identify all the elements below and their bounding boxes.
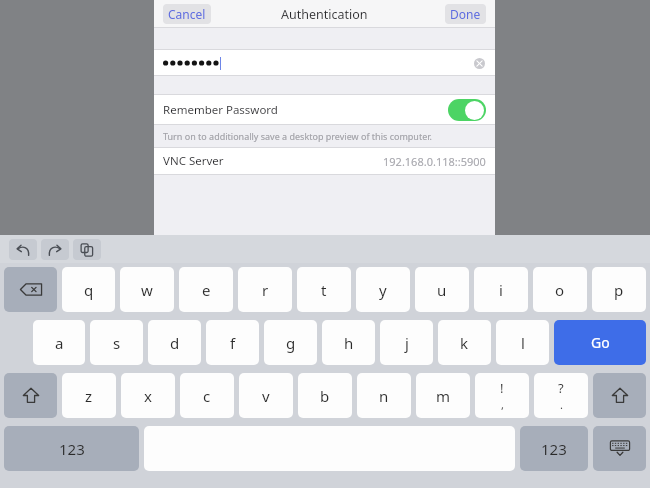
staticText: ? [558, 379, 564, 397]
button[interactable]: y [356, 267, 410, 312]
staticText: , [501, 397, 504, 412]
staticText: l [521, 333, 525, 353]
button[interactable]: o [533, 267, 587, 312]
staticText: n [379, 386, 389, 406]
button[interactable]: v [239, 373, 293, 418]
button[interactable]: x [121, 373, 175, 418]
staticText: 192.168.0.118::5900 [383, 154, 486, 169]
staticText: u [437, 280, 447, 300]
button[interactable]: f [206, 320, 259, 365]
staticText: d [170, 333, 180, 353]
staticText: j [405, 333, 409, 353]
staticText: k [460, 333, 469, 353]
button[interactable]: g [264, 320, 317, 365]
button[interactable]: t [297, 267, 351, 312]
button[interactable]: i [474, 267, 528, 312]
button[interactable]: Backspace [4, 267, 57, 312]
button[interactable]: n [357, 373, 411, 418]
staticText: Go [591, 333, 610, 352]
staticText: y [379, 280, 387, 300]
button[interactable]: Done [445, 4, 486, 24]
staticText: Turn on to additionally save a desktop p… [163, 130, 432, 142]
staticText: h [344, 333, 354, 353]
staticText: e [202, 280, 211, 300]
staticText: Cancel [168, 6, 206, 22]
button[interactable]: Redo [41, 239, 69, 260]
staticText: i [499, 280, 503, 300]
button[interactable]: m [416, 373, 470, 418]
staticText: ! [500, 379, 504, 397]
button[interactable]: s [90, 320, 143, 365]
button[interactable]: 123 [4, 426, 139, 471]
staticText: m [436, 386, 451, 406]
staticText: r [262, 280, 269, 300]
staticText: g [286, 333, 296, 353]
button[interactable]: r [238, 267, 292, 312]
staticText: s [113, 333, 121, 353]
button[interactable]: b [298, 373, 352, 418]
button[interactable]: Copy [73, 239, 101, 260]
button[interactable]: d [148, 320, 201, 365]
button[interactable]: Remember Password [154, 94, 495, 125]
button[interactable]: l [496, 320, 549, 365]
button[interactable]: ? [534, 373, 588, 418]
staticText: . [560, 397, 563, 412]
button[interactable]: Clear text [154, 49, 495, 76]
button[interactable]: u [415, 267, 469, 312]
button[interactable]: VNC Server [154, 147, 495, 175]
staticText: v [262, 386, 270, 406]
staticText: 123 [59, 439, 85, 459]
button[interactable]: Cancel [163, 4, 211, 24]
button[interactable]: Shift [4, 373, 57, 418]
button[interactable]: k [438, 320, 491, 365]
staticText: Authentication [281, 6, 368, 23]
button[interactable]: ! [475, 373, 529, 418]
button[interactable]: h [322, 320, 375, 365]
button[interactable]: j [380, 320, 433, 365]
button[interactable]: c [180, 373, 234, 418]
button[interactable]: Clear text [471, 55, 487, 71]
staticText: c [203, 386, 211, 406]
staticText: f [230, 333, 236, 353]
button[interactable]: q [62, 267, 115, 312]
staticText: 123 [541, 439, 567, 459]
button[interactable]: p [592, 267, 646, 312]
staticText: p [614, 280, 624, 300]
button[interactable]: 123 [520, 426, 588, 471]
staticText: o [555, 280, 565, 300]
button[interactable]: z [62, 373, 116, 418]
button[interactable]: Remember Password, on [448, 99, 486, 121]
staticText: z [85, 386, 93, 406]
staticText: t [321, 280, 327, 300]
staticText: Remember Password [163, 102, 278, 118]
staticText: a [55, 333, 64, 353]
staticText: q [84, 280, 94, 300]
staticText: VNC Server [163, 153, 224, 169]
staticText: Done [450, 6, 481, 22]
button[interactable]: Hide keyboard [593, 426, 646, 471]
button[interactable]: e [179, 267, 233, 312]
button[interactable]: Go [554, 320, 646, 365]
staticText: w [141, 280, 153, 300]
button[interactable]: Shift [593, 373, 646, 418]
button[interactable]: a [33, 320, 85, 365]
staticText: x [144, 386, 152, 406]
staticText: b [320, 386, 330, 406]
button[interactable]: w [120, 267, 174, 312]
button[interactable]: Undo [9, 239, 37, 260]
